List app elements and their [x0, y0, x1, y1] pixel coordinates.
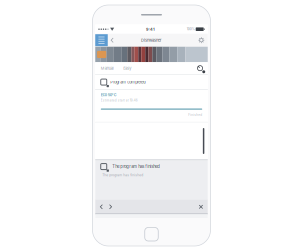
button[interactable]: Settings: [195, 34, 208, 47]
staticText: Manual: [101, 66, 114, 71]
button[interactable]: Previous field: [97, 199, 106, 214]
button[interactable]: Program completed: [95, 75, 208, 89]
staticText: The program has finished: [102, 173, 143, 177]
staticText: Eco 50°C: [101, 93, 117, 97]
staticText: Estimated start at 19:46: [101, 99, 138, 102]
button[interactable]: Back: [108, 34, 117, 47]
button[interactable]: Next field: [106, 199, 115, 214]
button[interactable]: Manual: [98, 62, 116, 74]
staticText: Finished: [188, 113, 202, 117]
staticText: Easy: [123, 66, 131, 71]
button[interactable]: Program dial: [196, 62, 204, 74]
button[interactable]: Dismiss: [196, 199, 206, 214]
staticText: Dishwasher: [141, 38, 162, 43]
button[interactable]: Easy: [121, 62, 133, 74]
staticText: 100%: [187, 27, 195, 31]
button[interactable]: Menu: [95, 34, 108, 46]
staticText: The program has finished: [112, 164, 160, 169]
staticText: Program completed: [110, 80, 145, 84]
button[interactable]: The program has finished: [95, 160, 208, 173]
staticText: 9:41: [146, 27, 155, 32]
